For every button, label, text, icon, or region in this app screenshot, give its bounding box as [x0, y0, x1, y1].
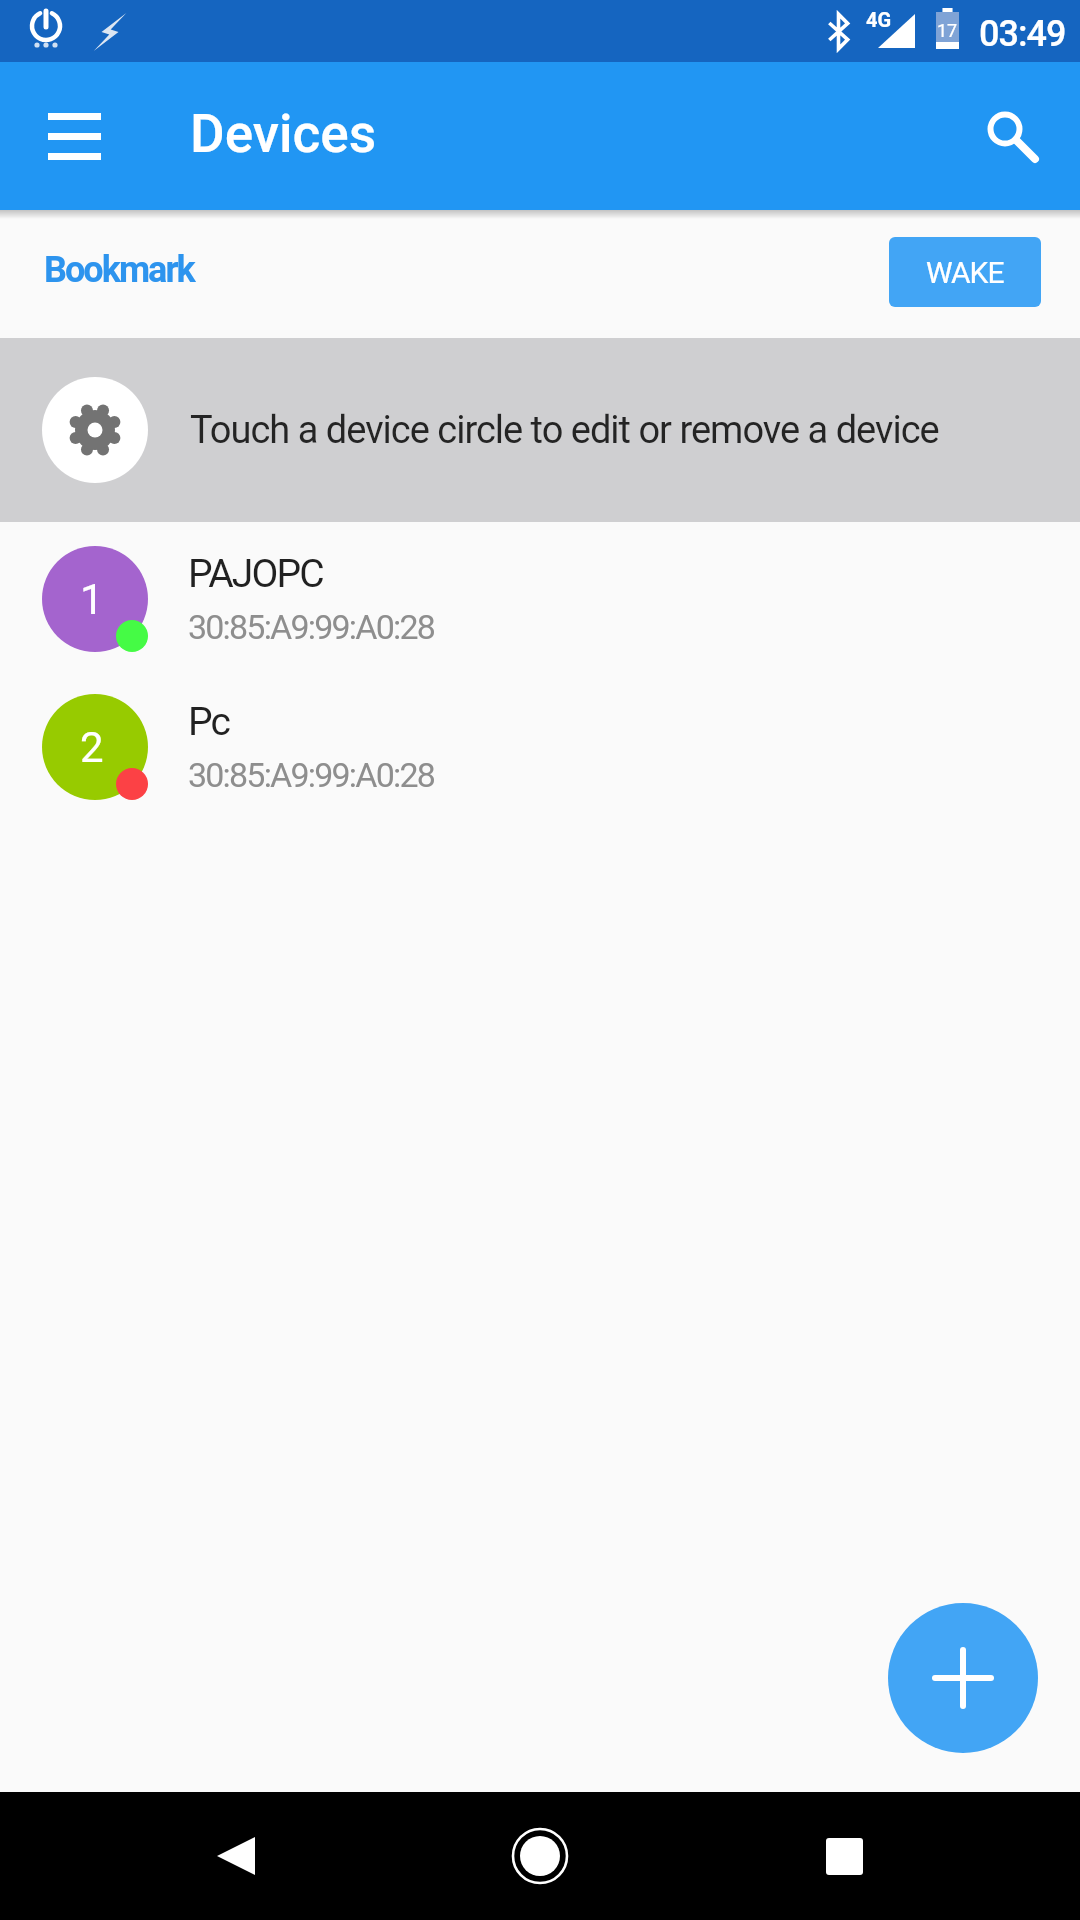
staticText: 17: [937, 20, 958, 41]
staticText: 03:49: [979, 13, 1066, 55]
staticText: 30:85:A9:99:A0:28: [188, 755, 435, 795]
staticText: Devices: [190, 103, 377, 165]
button[interactable]: [972, 96, 1052, 176]
button[interactable]: [34, 96, 114, 176]
staticText: Pc: [188, 699, 230, 745]
staticText: 1: [80, 575, 104, 624]
staticText: Touch a device circle to edit or remove …: [190, 408, 939, 453]
button[interactable]: [804, 1816, 884, 1896]
button[interactable]: [500, 1816, 580, 1896]
staticText: 30:85:A9:99:A0:28: [188, 607, 435, 647]
staticText: WAKE: [926, 255, 1004, 290]
button[interactable]: 1: [0, 525, 1080, 673]
button[interactable]: WAKE: [889, 237, 1041, 307]
staticText: Bookmark: [44, 249, 194, 291]
staticText: 4G: [866, 8, 892, 31]
staticText: 2: [80, 723, 104, 772]
staticText: PAJOPC: [188, 551, 323, 597]
button[interactable]: [888, 1603, 1038, 1753]
button[interactable]: [196, 1816, 276, 1896]
button[interactable]: 2: [0, 673, 1080, 821]
